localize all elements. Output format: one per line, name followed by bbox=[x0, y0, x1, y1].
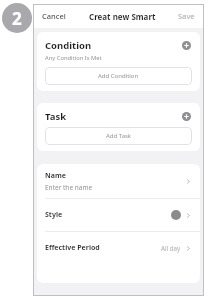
staticText: Effective Period bbox=[45, 243, 100, 253]
button[interactable]: Effective Period bbox=[37, 232, 200, 264]
button[interactable]: Cancel bbox=[40, 8, 68, 24]
staticText: Save bbox=[178, 11, 195, 21]
staticText: Creat new Smart bbox=[89, 11, 156, 22]
staticText: Style bbox=[45, 210, 63, 220]
staticText: 2 bbox=[12, 7, 22, 30]
staticText: All day bbox=[161, 244, 181, 252]
button[interactable]: Name bbox=[37, 164, 200, 198]
staticText: Any Condition Is Met bbox=[45, 54, 102, 62]
button[interactable]: Add Condition bbox=[45, 67, 192, 85]
staticText: Name bbox=[45, 171, 66, 181]
other: Step 2 bbox=[2, 3, 32, 33]
button[interactable]: Add Task bbox=[45, 127, 192, 145]
staticText: Enter the name bbox=[45, 183, 93, 192]
staticText: Condition bbox=[45, 39, 92, 52]
staticText: Task bbox=[45, 110, 67, 123]
button[interactable]: Style bbox=[37, 199, 200, 231]
button[interactable]: Save bbox=[176, 8, 197, 24]
button[interactable]: Add task options bbox=[180, 110, 192, 122]
staticText: Cancel bbox=[42, 11, 66, 21]
button[interactable]: Add condition options bbox=[180, 39, 192, 51]
staticText: Add Task bbox=[106, 132, 132, 140]
staticText: Add Condition bbox=[98, 72, 139, 80]
